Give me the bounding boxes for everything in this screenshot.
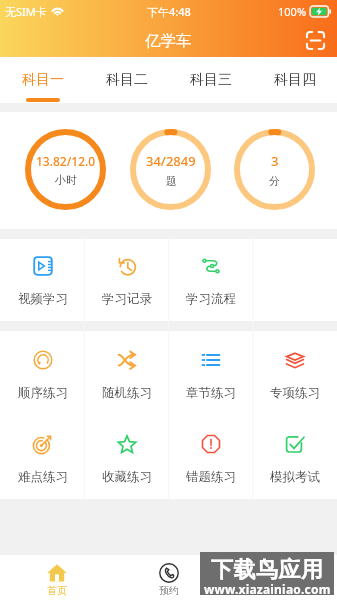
button[interactable]: 模拟考试 — [253, 415, 337, 499]
button[interactable]: 预约 — [113, 555, 225, 600]
button[interactable]: 科目三 — [169, 57, 253, 103]
button[interactable]: 科目四 — [253, 57, 337, 103]
staticText: 34/2849 — [146, 152, 196, 170]
button[interactable]: 首页 — [0, 555, 113, 600]
staticText: 专项练习 — [270, 385, 320, 401]
button[interactable]: 科目二 — [85, 57, 169, 103]
staticText: 错题练习 — [186, 469, 236, 485]
button[interactable]: 学习记录 — [85, 239, 169, 321]
button[interactable]: Scan — [302, 27, 328, 53]
staticText: 3 — [271, 152, 279, 170]
staticText: 下午4:48 — [147, 4, 191, 19]
staticText: 我的 — [271, 584, 291, 597]
staticText: 顺序练习 — [18, 385, 68, 401]
button[interactable]: 视频学习 — [0, 239, 85, 321]
staticText: 科目四 — [274, 71, 316, 89]
staticText: 题 — [166, 174, 177, 188]
staticText: 100% — [278, 4, 307, 19]
staticText: 首页 — [47, 584, 67, 597]
staticText: 科目二 — [106, 71, 148, 89]
staticText: 分 — [269, 174, 280, 188]
button[interactable]: 科目一 — [0, 57, 85, 103]
button[interactable]: 我的 — [225, 555, 337, 600]
button[interactable]: 收藏练习 — [85, 415, 169, 499]
staticText: 收藏练习 — [102, 469, 152, 485]
staticText: 随机练习 — [102, 385, 152, 401]
staticText: 亿学车 — [145, 31, 192, 51]
staticText: 小时 — [55, 173, 77, 187]
staticText: 视频学习 — [18, 291, 68, 307]
staticText: 无SIM卡 — [5, 4, 47, 19]
staticText: 预约 — [159, 584, 179, 597]
staticText: 科目一 — [22, 71, 64, 89]
staticText: 学习记录 — [102, 291, 152, 307]
button[interactable]: 难点练习 — [0, 415, 85, 499]
staticText: 科目三 — [190, 71, 232, 89]
button[interactable]: 错题练习 — [169, 415, 253, 499]
button[interactable]: 学习流程 — [169, 239, 253, 321]
button[interactable]: 专项练习 — [253, 331, 337, 415]
button[interactable]: 章节练习 — [169, 331, 253, 415]
button[interactable]: 随机练习 — [85, 331, 169, 415]
staticText: 模拟考试 — [270, 469, 320, 485]
staticText: 13.82/12.0 — [36, 153, 96, 169]
staticText: 学习流程 — [186, 291, 236, 307]
button[interactable]: 顺序练习 — [0, 331, 85, 415]
staticText: www.xiazainiao.com — [204, 581, 331, 597]
staticText: 下载鸟应用 — [211, 556, 324, 584]
staticText: 章节练习 — [186, 385, 236, 401]
staticText: 难点练习 — [18, 469, 68, 485]
